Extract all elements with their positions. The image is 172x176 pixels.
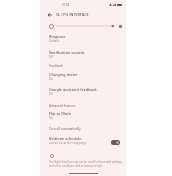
staticText: Bedtime schedule — [49, 136, 82, 141]
staticText: On — [49, 92, 54, 96]
staticText: The Night Interface may not be used for … — [49, 160, 122, 168]
staticText: Ringtone — [49, 34, 66, 39]
staticText: 10:54 — [62, 3, 70, 7]
button[interactable]: Ringtone — [40, 32, 126, 44]
button[interactable]: Flip to Dknb — [40, 108, 126, 121]
staticText: Default — [49, 39, 60, 43]
button[interactable]: Notification sounds — [40, 44, 126, 60]
button[interactable]: Back — [46, 11, 54, 19]
staticText: Google assistant feedback — [49, 87, 97, 92]
staticText: Flip to Dknb — [49, 111, 71, 116]
staticText: On — [49, 116, 54, 120]
staticText: Notification sounds — [49, 50, 85, 55]
button[interactable]: Brightness high — [118, 24, 123, 29]
button[interactable]: Brightness low — [49, 24, 54, 29]
button[interactable]: Charging meter — [40, 68, 126, 82]
button[interactable]: Bedtime schedule — [40, 131, 126, 145]
staticText: Feedback — [49, 64, 63, 68]
staticText: Off — [49, 55, 54, 59]
staticText: On — [49, 77, 54, 81]
staticText: Advanced features — [49, 104, 76, 108]
staticText: Turn off automatically — [49, 127, 81, 131]
button[interactable]: Google assistant feedback — [40, 82, 126, 97]
staticText: comes on at the stop page — [49, 141, 87, 145]
staticText: SL / PH INTERFACE — [56, 12, 89, 17]
staticText: Charging meter — [49, 72, 78, 77]
